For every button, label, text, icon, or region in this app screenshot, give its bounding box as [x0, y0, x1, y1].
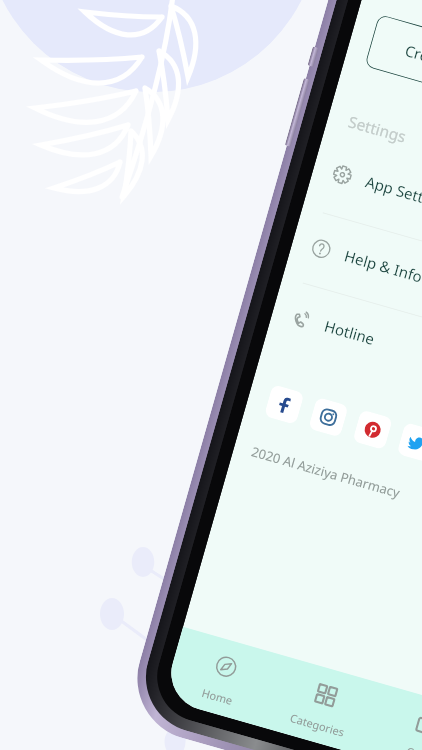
staticText: Create a new account	[403, 40, 422, 101]
button[interactable]: Facebook	[264, 384, 305, 425]
button[interactable]: Pinterest	[352, 409, 393, 450]
staticText: Help & Info	[342, 245, 422, 287]
staticText: Home	[200, 685, 235, 708]
staticText: Cart	[405, 743, 422, 750]
staticText: 2020 Al Aziziya Pharmacy	[249, 442, 402, 502]
button[interactable]: Twitter	[396, 422, 422, 463]
staticText: Settings	[346, 110, 409, 147]
staticText: Hotline	[322, 316, 378, 349]
button[interactable]: App Settings	[304, 131, 422, 287]
staticText: Categories	[288, 710, 346, 740]
button[interactable]: Cart	[362, 684, 422, 750]
button[interactable]: Help & Info	[283, 205, 422, 361]
button[interactable]: Categories	[262, 655, 383, 750]
staticText: App Settings	[363, 171, 422, 215]
button[interactable]: Home	[162, 627, 283, 727]
button[interactable]: Hotline	[263, 275, 422, 431]
button[interactable]: Instagram	[308, 397, 349, 438]
button[interactable]: Create a new account	[364, 14, 422, 127]
